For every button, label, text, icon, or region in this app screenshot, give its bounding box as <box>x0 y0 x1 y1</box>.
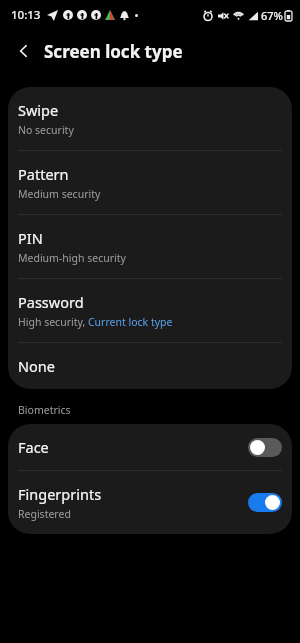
staticText: Registered <box>18 507 71 521</box>
button[interactable]: PIN <box>8 215 292 278</box>
staticText: 10:13 <box>11 7 41 23</box>
staticText: No security <box>18 123 74 137</box>
staticText: High security, Current lock type <box>18 315 173 329</box>
button[interactable]: Password <box>8 279 292 342</box>
staticText: None <box>18 356 55 376</box>
staticText: Face <box>18 437 49 457</box>
staticText: Fingerprints <box>18 484 102 504</box>
staticText: Biometrics <box>18 403 71 417</box>
button[interactable]: Back <box>8 35 40 67</box>
staticText: Pattern <box>18 164 69 184</box>
staticText: 67% <box>261 8 283 23</box>
staticText: Medium-high security <box>18 251 126 265</box>
button[interactable]: Face <box>8 424 292 470</box>
button[interactable]: On <box>248 493 282 512</box>
button[interactable]: Swipe <box>8 87 292 150</box>
button[interactable]: Fingerprints <box>8 471 292 534</box>
staticText: Password <box>18 292 84 312</box>
button[interactable]: Off <box>248 438 282 457</box>
staticText: PIN <box>18 228 43 248</box>
staticText: Medium security <box>18 187 101 201</box>
button[interactable]: Pattern <box>8 151 292 214</box>
staticText: Swipe <box>18 100 59 120</box>
staticText: Screen lock type <box>44 40 183 63</box>
button[interactable]: None <box>8 343 292 389</box>
